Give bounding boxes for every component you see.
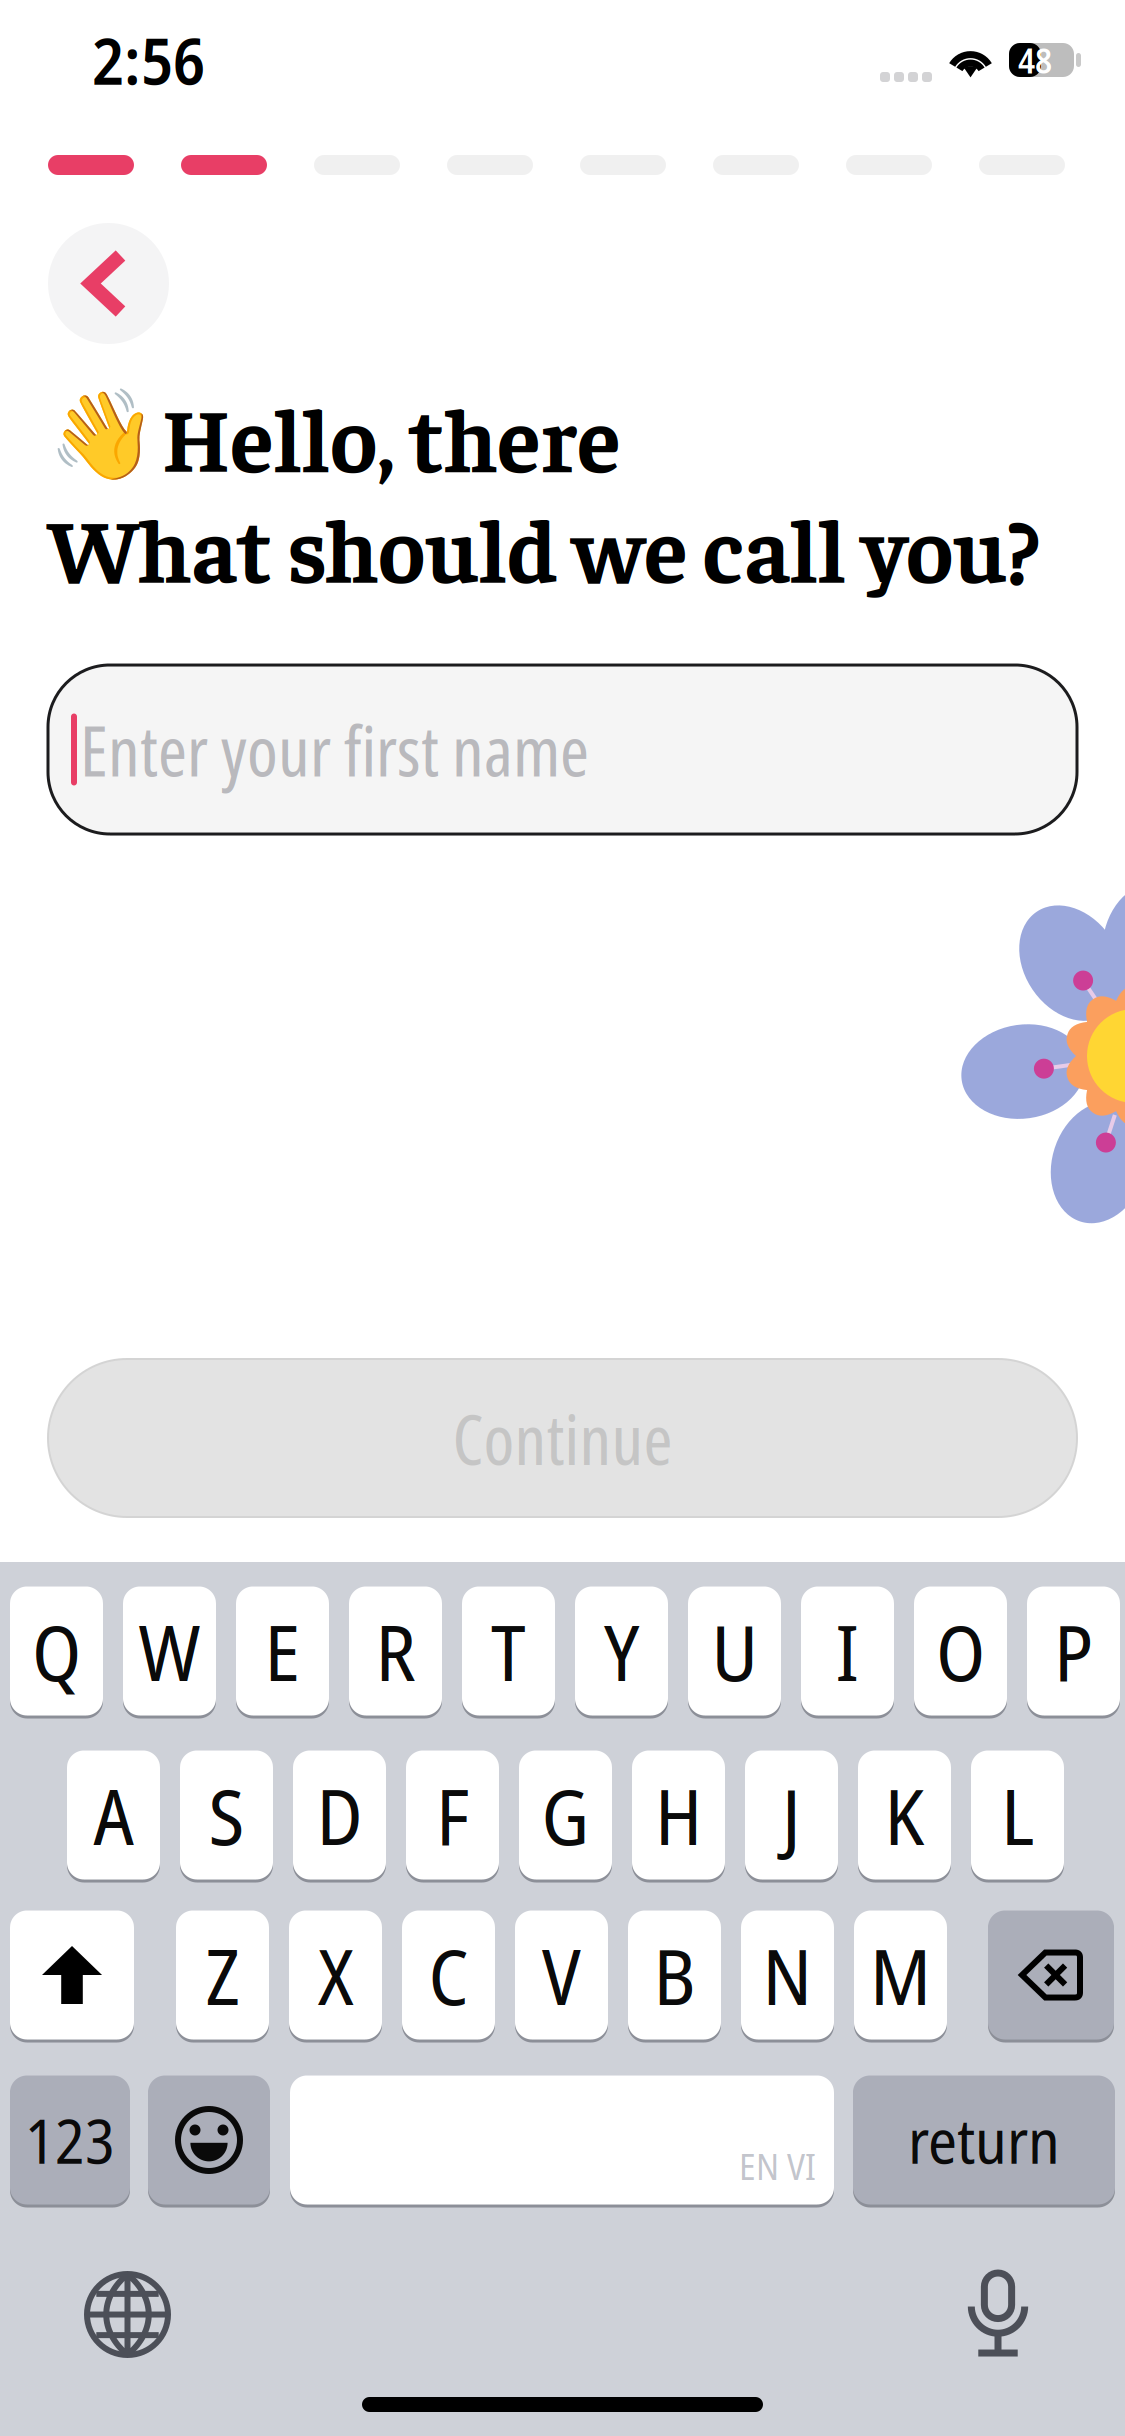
button[interactable]: Back [48,223,169,344]
button[interactable]: V [515,1909,608,2041]
button[interactable]: U [688,1585,781,1717]
button[interactable]: A [67,1749,160,1881]
button[interactable]: S [180,1749,273,1881]
staticText: H [655,1762,702,1868]
staticText: L [1001,1762,1034,1868]
staticText: F [436,1762,469,1868]
staticText: Y [604,1598,639,1704]
staticText: J [782,1762,801,1868]
button[interactable]: F [406,1749,499,1881]
button[interactable]: T [462,1585,555,1717]
button[interactable]: O [914,1585,1007,1717]
staticText: W [138,1598,200,1704]
button[interactable]: J [745,1749,838,1881]
staticText: R [375,1598,415,1704]
staticText: U [711,1598,757,1704]
button[interactable]: N [741,1909,834,2041]
button[interactable]: L [971,1749,1064,1881]
button[interactable]: Emoji [148,2074,270,2206]
button[interactable]: H [632,1749,725,1881]
button[interactable]: G [519,1749,612,1881]
button[interactable]: Continue [48,1359,1077,1517]
staticText: D [316,1762,362,1868]
button[interactable]: K [858,1749,951,1881]
button[interactable]: I [801,1585,894,1717]
staticText: 👋 [48,384,158,487]
button[interactable]: Y [575,1585,668,1717]
button[interactable]: 123 [10,2074,130,2206]
button[interactable]: B [628,1909,721,2041]
button[interactable]: D [293,1749,386,1881]
staticText: P [1054,1598,1093,1704]
staticText: Z [205,1922,239,2028]
staticText: 2:56 [92,16,205,104]
staticText: E [264,1598,300,1704]
staticText: O [936,1598,985,1704]
staticText: I [835,1598,859,1704]
button[interactable]: Z [176,1909,269,2041]
staticText: What should we call you? [48,490,1039,602]
staticText: C [428,1922,468,2028]
staticText: Enter your first name [80,702,589,797]
button[interactable]: Delete [988,1909,1114,2041]
button[interactable]: X [289,1909,382,2041]
button[interactable]: Next keyboard [87,2274,168,2355]
button[interactable]: C [402,1909,495,2041]
staticText: N [762,1922,812,2028]
staticText: S [208,1762,244,1868]
staticText: return [908,2098,1060,2182]
button[interactable]: return [853,2074,1115,2206]
staticText: T [491,1598,526,1704]
button[interactable]: Space [290,2074,834,2206]
button[interactable]: M [854,1909,947,2041]
staticText: B [653,1922,695,2028]
staticText: G [541,1762,589,1868]
staticText: Q [32,1598,81,1704]
staticText: M [870,1922,931,2028]
staticText: V [542,1922,581,2028]
staticText: 123 [25,2098,115,2182]
button[interactable]: Q [10,1585,103,1717]
staticText: A [93,1762,133,1868]
staticText: Continue [452,1391,672,1485]
button[interactable]: P [1027,1585,1120,1717]
button[interactable]: Dictate [969,2270,1027,2356]
button[interactable]: W [123,1585,216,1717]
staticText: 48 [1018,36,1052,84]
button[interactable]: E [236,1585,329,1717]
staticText: EN VI [739,2141,816,2190]
button[interactable]: R [349,1585,442,1717]
staticText: X [317,1922,353,2028]
staticText: K [884,1762,924,1868]
button[interactable]: Shift [10,1909,134,2041]
staticText: Hello, there [162,379,621,492]
